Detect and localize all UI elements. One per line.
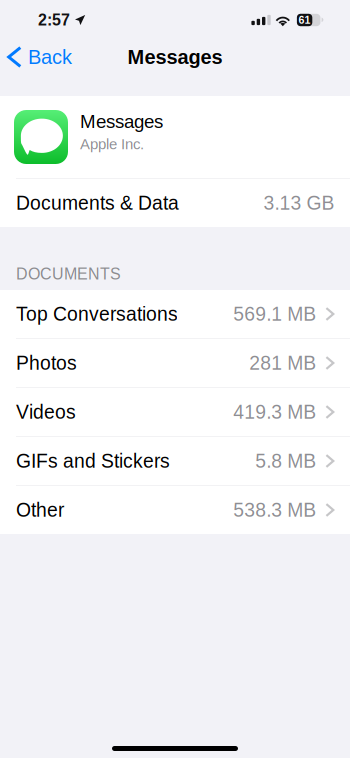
staticText: Videos [16,401,76,423]
staticText: Messages [80,111,163,132]
button[interactable]: Videos [0,388,350,436]
button[interactable]: Photos [0,339,350,387]
staticText: Messages [127,46,222,68]
button[interactable]: Documents & Data [0,179,350,227]
staticText: 3.13 GB [263,192,334,214]
staticText: Photos [16,352,77,374]
staticText: 2:57 [38,11,70,29]
staticText: 281 MB [249,352,316,374]
staticText: 61 [299,14,311,26]
staticText: 419.3 MB [233,401,316,423]
staticText: Other [16,499,64,521]
button[interactable]: Other [0,486,350,534]
button[interactable]: Back [0,40,82,74]
button[interactable]: Top Conversations [0,290,350,338]
staticText: DOCUMENTS [16,265,121,283]
staticText: Back [28,46,72,68]
button[interactable]: Messages [0,96,350,178]
staticText: 538.3 MB [233,499,316,521]
staticText: 569.1 MB [233,303,316,325]
staticText: Top Conversations [16,303,178,325]
staticText: 5.8 MB [255,450,316,472]
staticText: Apple Inc. [80,136,144,153]
button[interactable]: GIFs and Stickers [0,437,350,485]
staticText: GIFs and Stickers [16,450,170,472]
staticText: Documents & Data [16,192,179,214]
